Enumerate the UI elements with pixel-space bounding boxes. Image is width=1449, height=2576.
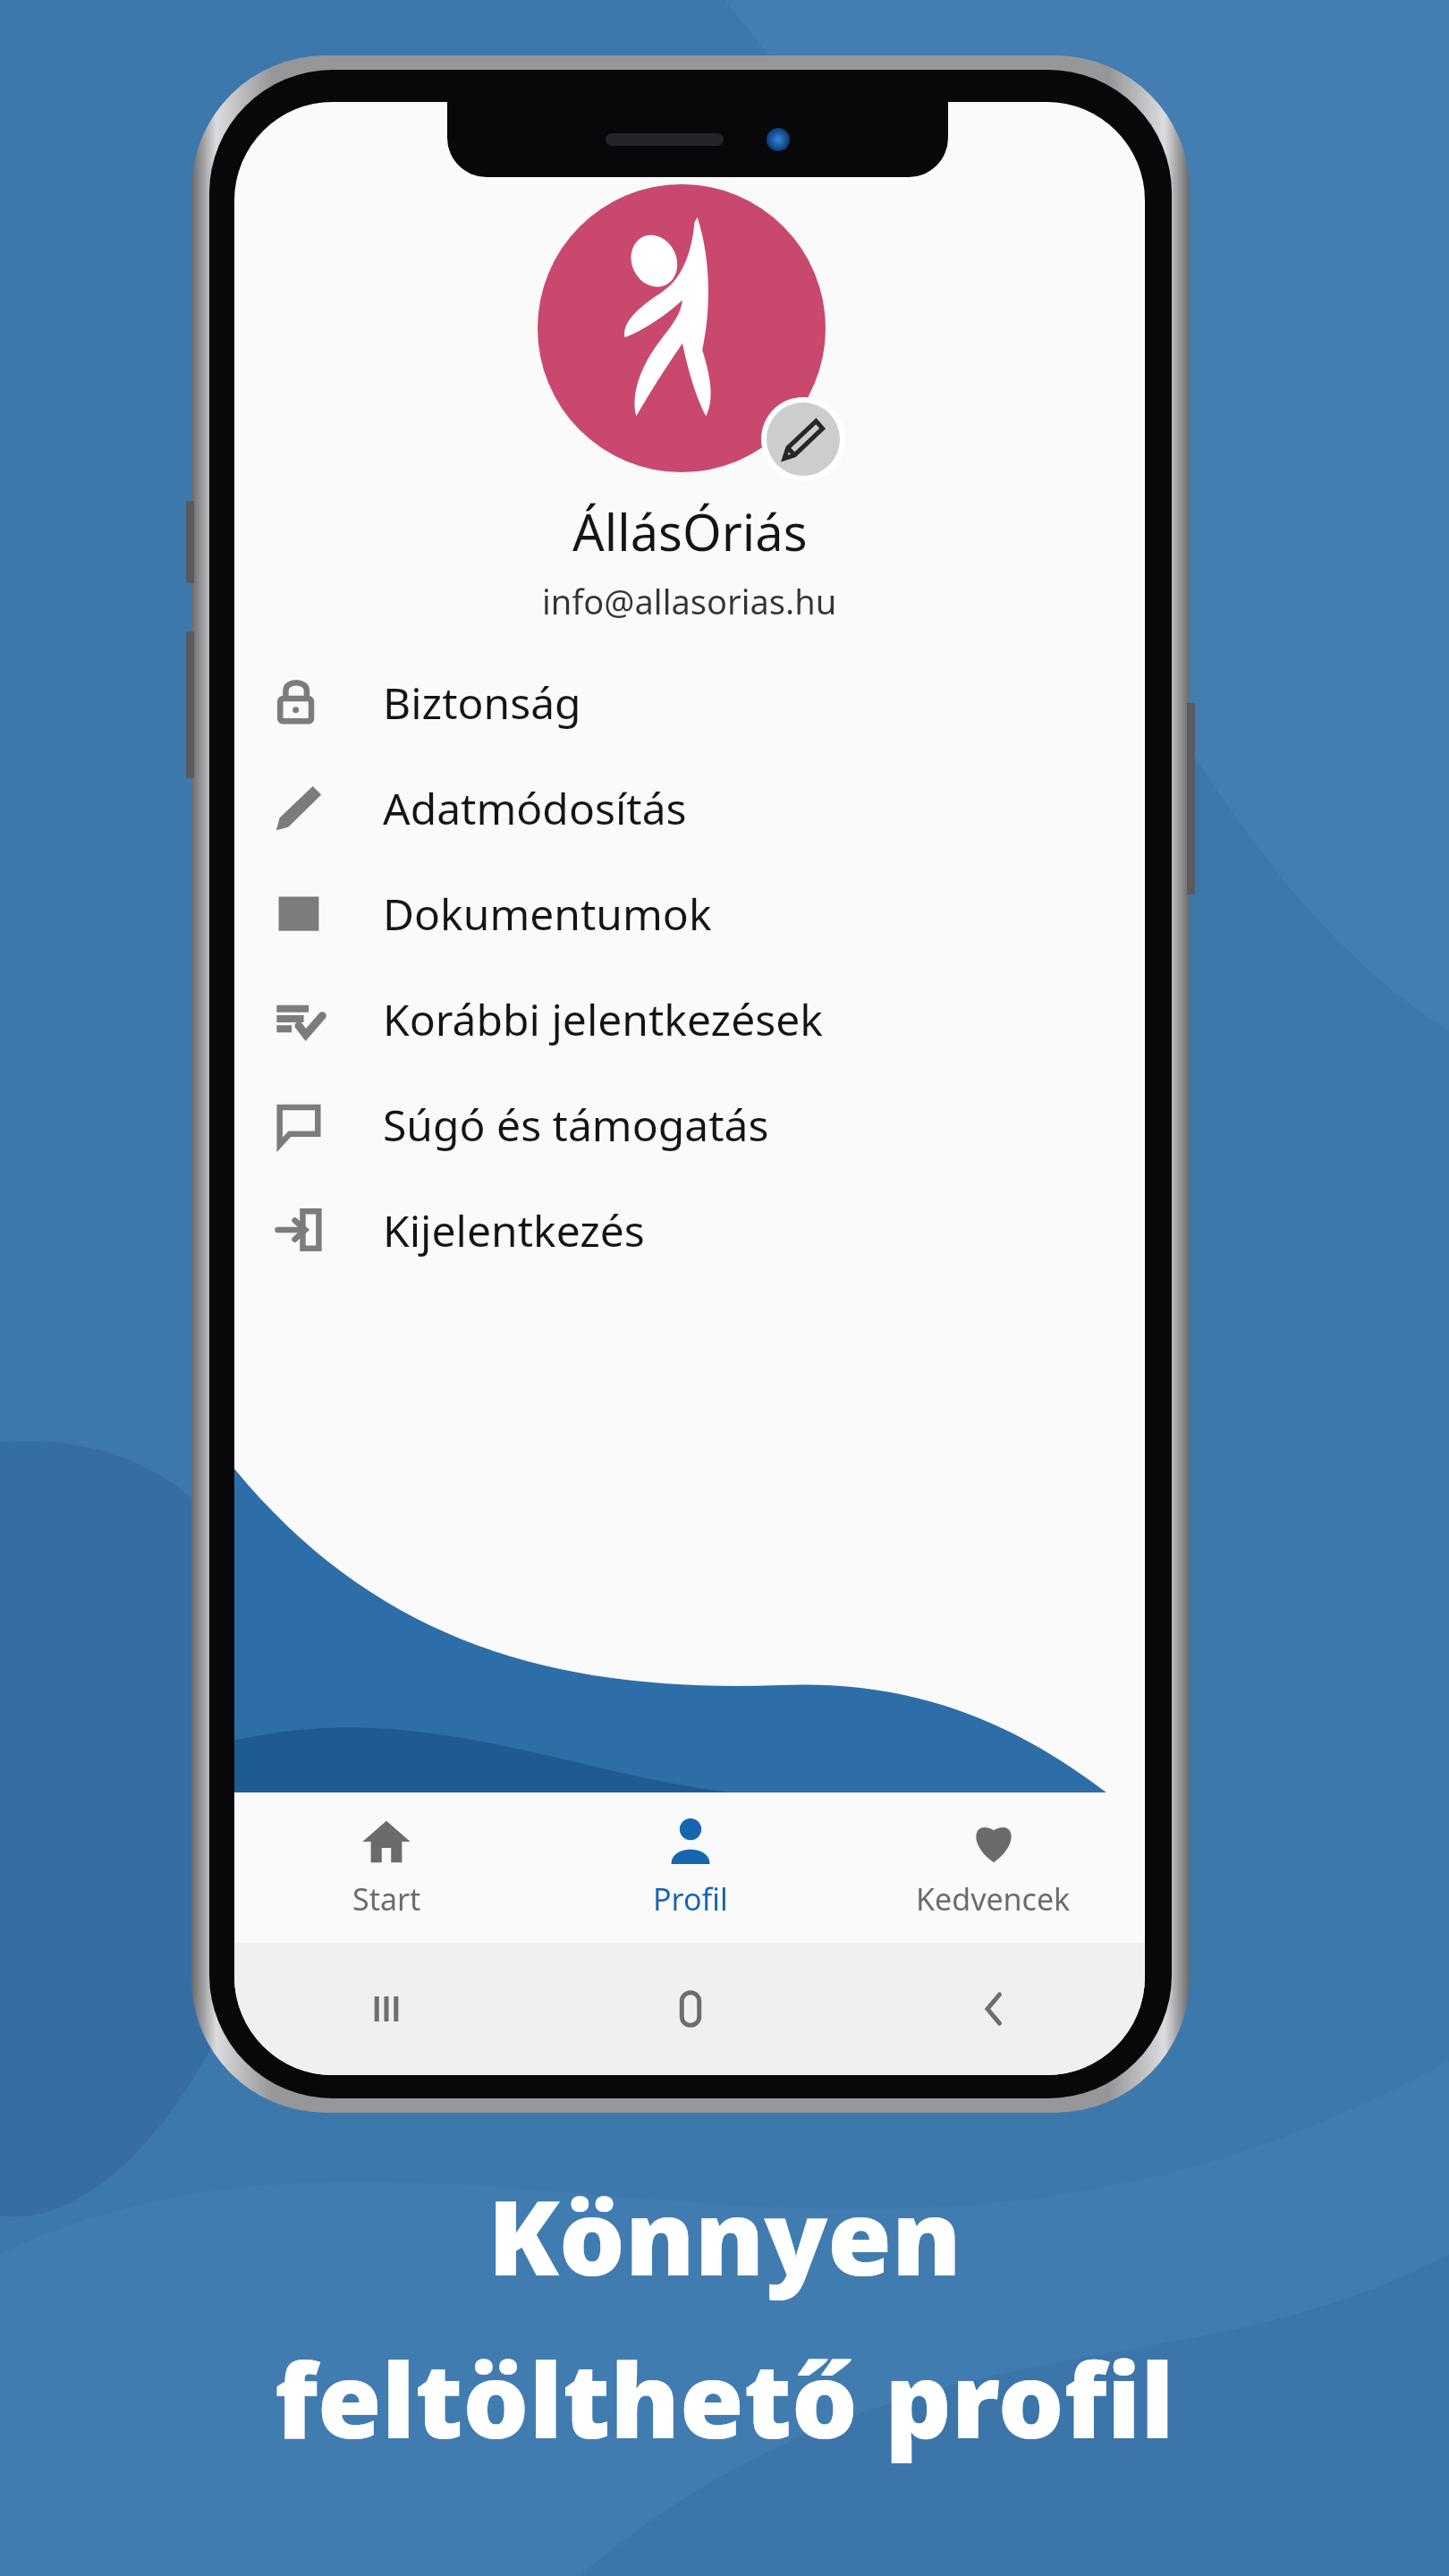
button[interactable]: Home: [538, 1943, 842, 2075]
staticText: Start: [352, 1878, 421, 1919]
staticText: Korábbi jelentkezések: [383, 990, 823, 1048]
button[interactable]: Start: [234, 1792, 538, 1943]
staticText: ÁllásÓriás: [572, 497, 808, 565]
staticText: feltölthető profil: [275, 2327, 1174, 2469]
staticText: Profil: [653, 1878, 728, 1919]
staticText: Könnyen: [487, 2165, 962, 2306]
button[interactable]: Korábbi jelentkezések: [234, 966, 1145, 1072]
staticText: Kedvencek: [916, 1878, 1071, 1919]
button[interactable]: Recents: [234, 1943, 538, 2075]
button[interactable]: Dokumentumok: [234, 860, 1145, 966]
staticText: Biztonság: [383, 674, 581, 732]
button[interactable]: Biztonság: [234, 649, 1145, 755]
staticText: Adatmódosítás: [383, 779, 687, 837]
button[interactable]: Kijelentkezés: [234, 1177, 1145, 1283]
button[interactable]: Kedvencek: [842, 1792, 1145, 1943]
button[interactable]: Back: [842, 1943, 1145, 2075]
button[interactable]: Profilkép szerkesztése: [767, 402, 840, 476]
staticText: info@allasorias.hu: [542, 578, 837, 624]
button[interactable]: Profilkép: [538, 184, 826, 472]
button[interactable]: Profil: [538, 1792, 842, 1943]
button[interactable]: Adatmódosítás: [234, 755, 1145, 860]
staticText: Dokumentumok: [383, 885, 712, 943]
staticText: Súgó és támogatás: [383, 1096, 769, 1154]
button[interactable]: Súgó és támogatás: [234, 1072, 1145, 1177]
staticText: Kijelentkezés: [383, 1201, 645, 1259]
